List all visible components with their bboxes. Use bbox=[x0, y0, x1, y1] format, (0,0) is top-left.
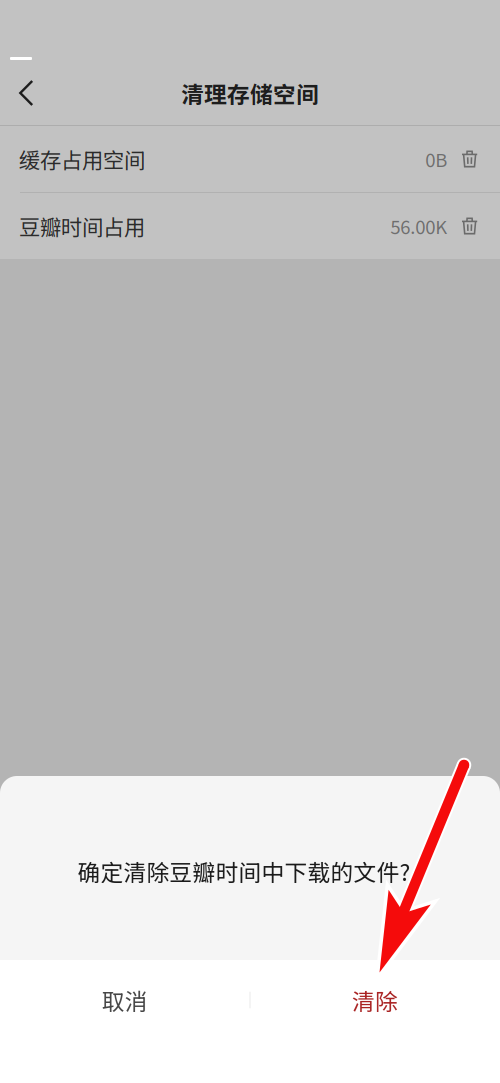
button[interactable]: Back bbox=[0, 60, 55, 126]
staticText: 取消 bbox=[102, 984, 148, 1016]
staticText: 缓存占用空间 bbox=[19, 144, 145, 174]
staticText: 豆瓣时间占用 bbox=[19, 211, 145, 241]
staticText: 清理存储空间 bbox=[181, 77, 319, 109]
staticText: 56.00K bbox=[390, 213, 447, 239]
staticText: 0B bbox=[425, 146, 447, 172]
staticText: 确定清除豆瓣时间中下载的文件? bbox=[77, 855, 410, 887]
button[interactable]: 豆瓣时间占用 bbox=[0, 193, 500, 259]
button[interactable]: 缓存占用空间 bbox=[0, 126, 500, 192]
button[interactable]: 取消 bbox=[0, 960, 250, 1040]
button[interactable]: 清除 bbox=[250, 960, 500, 1040]
staticText: 清除 bbox=[352, 984, 398, 1016]
